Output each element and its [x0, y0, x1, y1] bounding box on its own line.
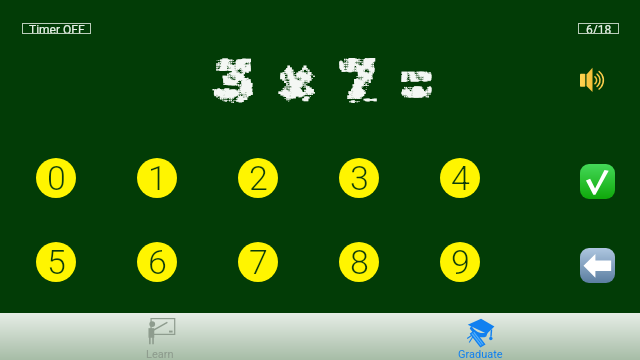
staticText: 9	[451, 242, 470, 282]
staticText: 6/18	[586, 23, 612, 34]
staticText: 4	[451, 158, 470, 198]
button[interactable]: Back	[580, 248, 615, 283]
staticText: Timer OFF	[29, 23, 85, 34]
staticText: 3 × 7 =	[212, 46, 440, 117]
button[interactable]: Timer OFF	[22, 23, 91, 34]
button[interactable]: 9	[440, 242, 480, 282]
button[interactable]: Graduate	[448, 313, 512, 360]
button[interactable]: Speak question	[580, 67, 605, 92]
staticText: 2	[249, 158, 268, 198]
staticText: 8	[350, 242, 369, 282]
staticText: Graduate	[458, 348, 503, 360]
staticText: 7	[249, 242, 268, 282]
staticText: 3	[350, 158, 369, 198]
staticText: 5	[47, 242, 66, 282]
button[interactable]: 6	[137, 242, 177, 282]
button[interactable]: Submit answer	[580, 164, 615, 199]
button[interactable]: 8	[339, 242, 379, 282]
button[interactable]: Learn	[128, 313, 192, 360]
staticText: 1	[148, 158, 167, 198]
button[interactable]: 0	[36, 158, 76, 198]
button[interactable]: 7	[238, 242, 278, 282]
button[interactable]: 2	[238, 158, 278, 198]
staticText: Learn	[146, 348, 174, 360]
button[interactable]: 5	[36, 242, 76, 282]
staticText: 0	[47, 158, 66, 198]
button[interactable]: 1	[137, 158, 177, 198]
button[interactable]: 3	[339, 158, 379, 198]
button[interactable]: 4	[440, 158, 480, 198]
staticText: 6	[148, 242, 167, 282]
button[interactable]: 6/18	[578, 23, 619, 34]
